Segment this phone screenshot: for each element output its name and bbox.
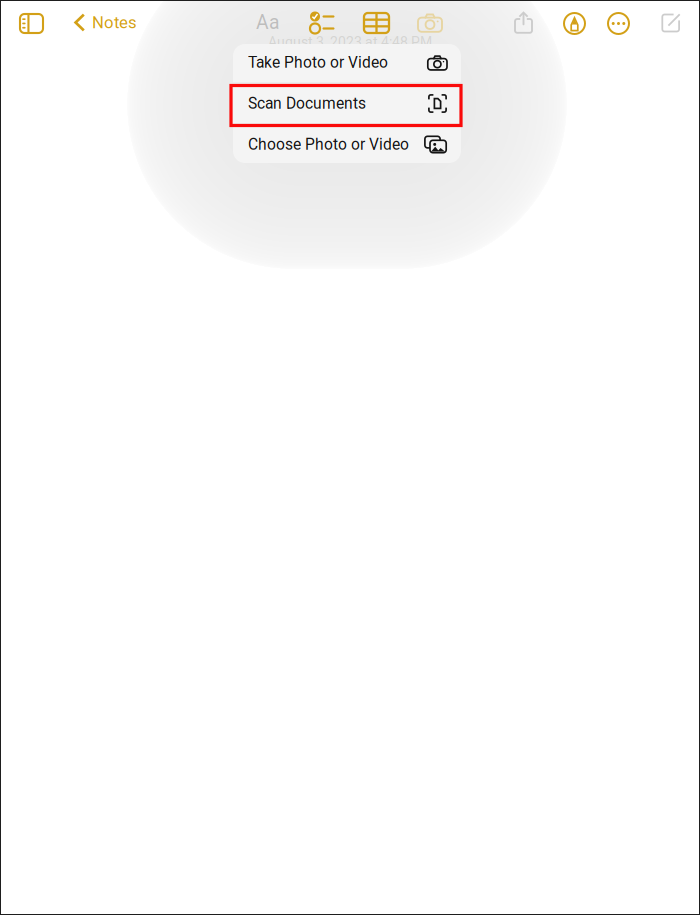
button[interactable]: Show Sidebar (20, 14, 43, 33)
staticText: Aa (256, 11, 280, 34)
button[interactable]: Markup (564, 13, 585, 34)
staticText: Take Photo or Video (248, 53, 388, 72)
button[interactable]: Notes (74, 13, 137, 32)
button[interactable]: Checklist (310, 11, 334, 34)
staticText: Notes (92, 13, 137, 32)
button[interactable]: Share (514, 11, 533, 34)
staticText: Choose Photo or Video (248, 135, 409, 154)
button[interactable]: More (608, 13, 629, 34)
button[interactable]: New Note (661, 13, 681, 33)
button[interactable]: Choose Photo or Video (233, 124, 461, 164)
button[interactable]: Format (256, 11, 280, 34)
button[interactable]: Take Photo or Video (233, 42, 461, 82)
staticText: Scan Documents (248, 94, 366, 113)
staticText: August 3, 2023 at 4:48 PM (268, 34, 432, 50)
button[interactable]: Scan Documents (233, 83, 461, 123)
button[interactable]: Insert Media (418, 13, 442, 32)
button[interactable]: Table (364, 13, 389, 33)
